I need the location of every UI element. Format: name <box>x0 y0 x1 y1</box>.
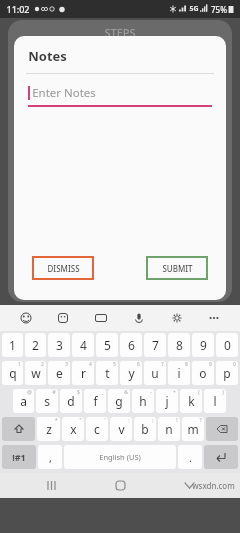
staticText: Enter Notes <box>32 85 96 101</box>
button[interactable]: Stickers <box>51 306 75 330</box>
staticText: 0 <box>224 337 231 353</box>
staticText: k <box>188 393 195 409</box>
button[interactable]: t <box>96 361 118 385</box>
button[interactable]: , <box>38 445 62 469</box>
button[interactable]: z <box>37 417 60 441</box>
button[interactable]: v <box>110 417 132 441</box>
button[interactable]: Symbols <box>2 445 36 469</box>
button[interactable]: Recent apps <box>35 473 69 498</box>
staticText: 2 <box>41 361 44 368</box>
button[interactable]: e <box>48 361 70 385</box>
button[interactable]: g <box>108 389 130 413</box>
button[interactable]: More options <box>202 306 226 330</box>
staticText: d <box>67 393 75 409</box>
button[interactable]: w <box>25 361 46 385</box>
staticText: 6 <box>137 361 140 368</box>
staticText: 8 <box>185 361 188 368</box>
staticText: SUBMIT <box>162 263 193 274</box>
button[interactable]: 8 <box>168 333 190 357</box>
button[interactable]: 4 <box>72 333 94 357</box>
button[interactable]: Emoji <box>14 306 38 330</box>
button[interactable]: DISMISS <box>32 256 94 280</box>
button[interactable]: f <box>84 389 106 413</box>
button[interactable]: q <box>2 361 23 385</box>
button[interactable]: j <box>156 389 178 413</box>
button[interactable]: Voice input <box>127 306 151 330</box>
button[interactable]: y <box>120 361 142 385</box>
button[interactable]: h <box>132 389 154 413</box>
button[interactable]: x <box>62 417 84 441</box>
staticText: w <box>31 365 41 381</box>
staticText: : <box>128 417 130 424</box>
staticText: j <box>165 393 169 409</box>
staticText: v <box>118 421 125 437</box>
button[interactable]: o <box>192 361 214 385</box>
staticText: Notes <box>28 47 67 65</box>
button[interactable]: p <box>216 361 238 385</box>
button[interactable]: Shift <box>2 417 35 441</box>
button[interactable]: 5 <box>96 333 118 357</box>
staticText: wsxdn.com <box>192 480 235 491</box>
staticText: r <box>81 365 86 381</box>
staticText: 7 <box>161 361 164 368</box>
button[interactable]: 9 <box>192 333 214 357</box>
button[interactable]: c <box>86 417 108 441</box>
staticText: i <box>177 365 181 381</box>
staticText: z <box>46 421 52 437</box>
staticText: $ <box>77 389 80 396</box>
button[interactable]: n <box>158 417 180 441</box>
button[interactable]: u <box>144 361 166 385</box>
button[interactable]: English (US) <box>64 445 176 469</box>
staticText: n <box>165 421 173 437</box>
staticText: t <box>105 365 110 381</box>
staticText: DISMISS <box>47 263 80 274</box>
staticText: 5 <box>113 361 116 368</box>
button[interactable]: Backspace <box>206 417 238 441</box>
button[interactable]: Home <box>103 473 137 498</box>
button[interactable]: b <box>134 417 156 441</box>
button[interactable]: Settings <box>165 306 189 330</box>
staticText: 3 <box>56 337 63 353</box>
button[interactable]: m <box>182 417 204 441</box>
button[interactable]: 3 <box>48 333 70 357</box>
staticText: m <box>187 421 199 437</box>
staticText: ' <box>104 417 106 424</box>
button[interactable]: s <box>36 389 58 413</box>
staticText: 6 <box>128 337 135 353</box>
staticText: 3 <box>65 361 68 368</box>
staticText: ) <box>222 389 224 396</box>
staticText: , <box>49 450 52 465</box>
button[interactable]: Add <box>194 274 216 296</box>
staticText: 8 <box>176 337 183 353</box>
staticText: 11:02 <box>6 3 30 15</box>
staticText: q <box>9 365 17 381</box>
button[interactable]: 2 <box>25 333 46 357</box>
button[interactable]: 1 <box>2 333 23 357</box>
staticText: u <box>151 365 159 381</box>
button[interactable]: . <box>178 445 202 469</box>
button[interactable]: 0 <box>216 333 238 357</box>
button[interactable]: GIF <box>89 306 113 330</box>
staticText: 9 <box>209 361 212 368</box>
button[interactable]: Enter <box>204 445 238 469</box>
button[interactable]: k <box>180 389 202 413</box>
button[interactable]: Back <box>172 473 206 498</box>
staticText: ? <box>199 417 202 424</box>
staticText: y <box>128 365 135 381</box>
button[interactable]: i <box>168 361 190 385</box>
button[interactable]: 7 <box>144 333 166 357</box>
staticText: - <box>150 389 152 396</box>
staticText: g <box>115 393 123 409</box>
staticText: 7 <box>152 337 159 353</box>
button[interactable]: SUBMIT <box>146 256 208 280</box>
button[interactable]: r <box>72 361 94 385</box>
staticText: ; <box>152 417 154 424</box>
button[interactable]: 6 <box>120 333 142 357</box>
staticText: 5 <box>104 337 111 353</box>
staticText: a <box>20 393 27 409</box>
staticText: p <box>223 365 231 381</box>
button[interactable]: a <box>13 389 34 413</box>
button[interactable]: d <box>60 389 82 413</box>
staticText: _ <box>101 389 104 396</box>
button[interactable]: l <box>204 389 226 413</box>
